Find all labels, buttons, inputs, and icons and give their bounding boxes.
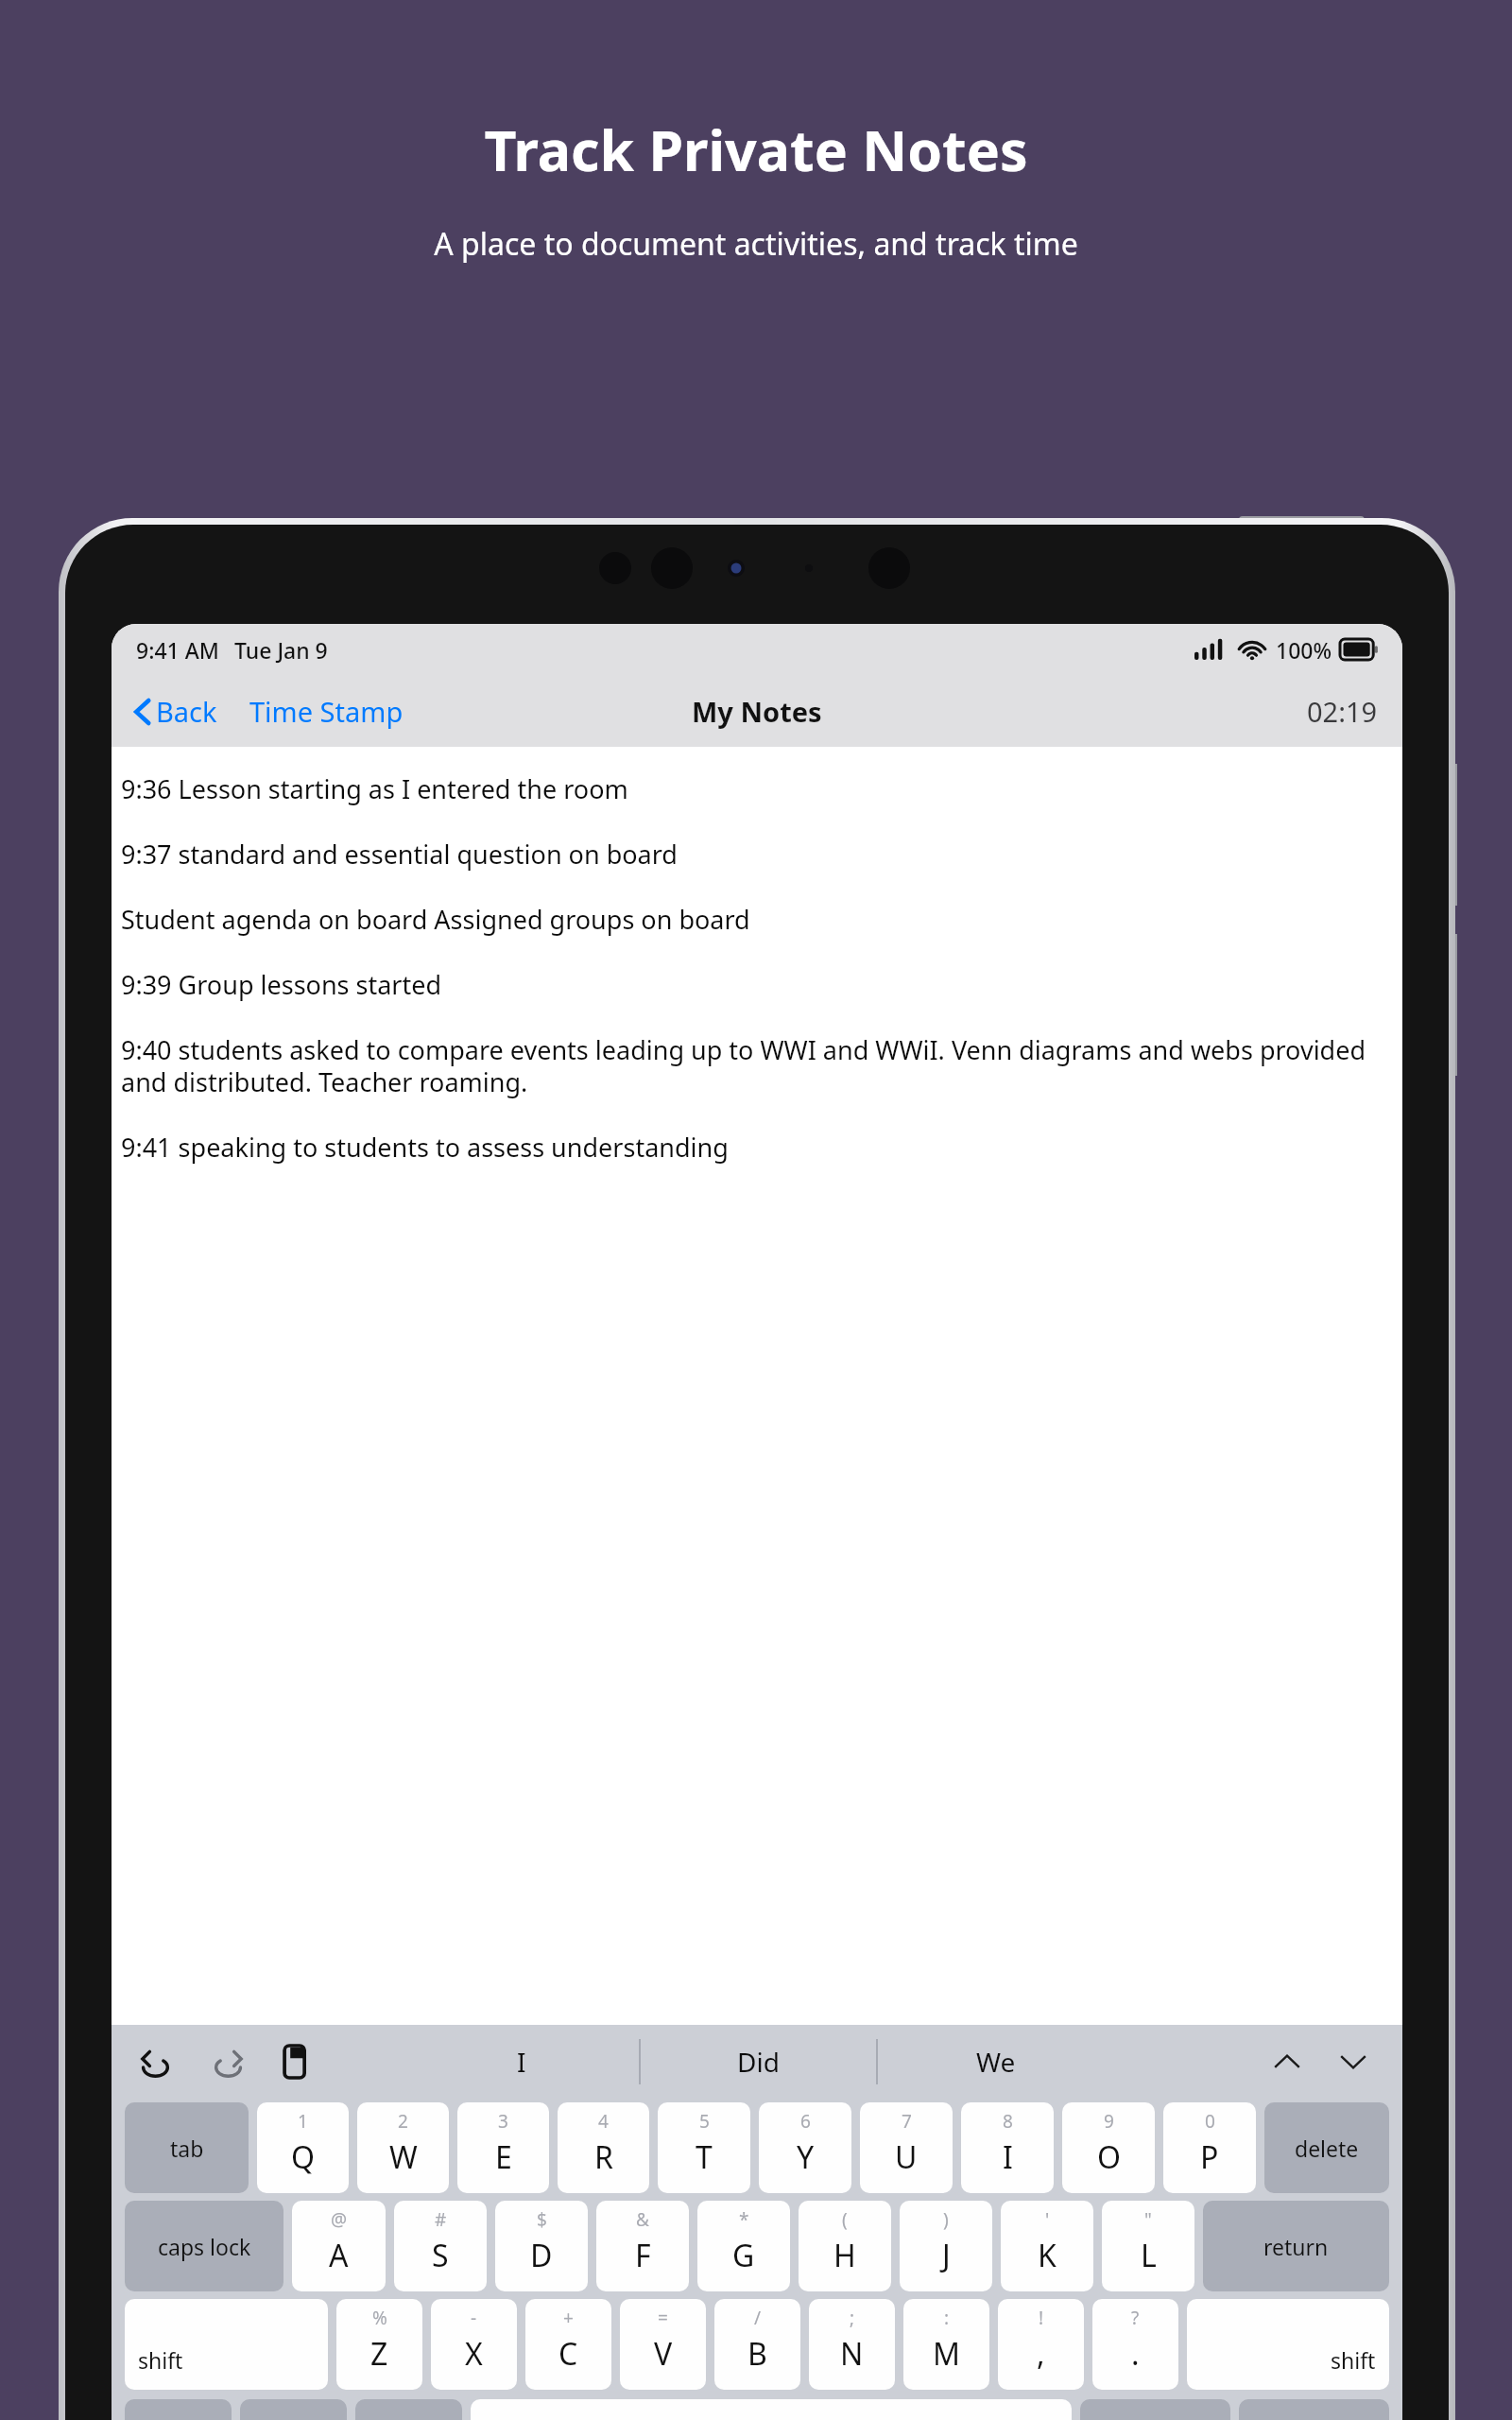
- button[interactable]: 8: [961, 2102, 1054, 2193]
- staticText: shift: [1331, 2345, 1376, 2375]
- staticText: 3: [498, 2109, 508, 2134]
- staticText: ;: [850, 2306, 855, 2330]
- staticText: Q: [291, 2136, 315, 2178]
- staticText: ': [1045, 2207, 1050, 2232]
- staticText: X: [465, 2333, 483, 2375]
- staticText: O: [1097, 2136, 1121, 2178]
- button[interactable]: We: [878, 2025, 1113, 2099]
- staticText: ": [1144, 2207, 1152, 2232]
- button[interactable]: shift: [1187, 2299, 1389, 2390]
- staticText: %: [372, 2306, 387, 2330]
- staticText: N: [840, 2333, 864, 2375]
- staticText: H: [833, 2235, 856, 2276]
- staticText: 2: [398, 2109, 408, 2134]
- staticText: 6: [800, 2109, 811, 2134]
- staticText: Tue Jan 9: [234, 635, 328, 665]
- button[interactable]: ;: [809, 2299, 895, 2390]
- button[interactable]: @: [292, 2201, 386, 2291]
- staticText: A: [329, 2235, 349, 2276]
- button[interactable]: Time Stamp: [242, 687, 411, 735]
- staticText: L: [1141, 2235, 1157, 2276]
- staticText: Back: [156, 693, 217, 730]
- staticText: !: [1039, 2306, 1044, 2330]
- button[interactable]: 6: [759, 2102, 851, 2193]
- button[interactable]: %: [336, 2299, 422, 2390]
- staticText: #: [435, 2207, 447, 2232]
- button[interactable]: I: [404, 2025, 639, 2099]
- staticText: return: [1263, 2232, 1329, 2261]
- button[interactable]: +: [525, 2299, 611, 2390]
- button[interactable]: .?123: [1080, 2399, 1230, 2420]
- staticText: Y: [797, 2136, 815, 2178]
- button[interactable]: /: [714, 2299, 800, 2390]
- button[interactable]: -: [431, 2299, 517, 2390]
- button[interactable]: Hide keyboard: [1239, 2399, 1389, 2420]
- button[interactable]: Dictate: [355, 2399, 462, 2420]
- staticText: C: [558, 2333, 578, 2375]
- button[interactable]: shift: [125, 2299, 328, 2390]
- staticText: 02:19: [1307, 693, 1378, 730]
- staticText: P: [1200, 2136, 1219, 2178]
- button[interactable]: 9:36 Lesson starting as I entered the ro…: [112, 747, 1402, 2025]
- button[interactable]: 3: [457, 2102, 549, 2193]
- staticText: V: [654, 2333, 673, 2375]
- button[interactable]: 2: [357, 2102, 449, 2193]
- button[interactable]: #: [394, 2201, 487, 2291]
- button[interactable]: Paste: [272, 2037, 321, 2086]
- staticText: 9:41 AM: [136, 635, 219, 665]
- button[interactable]: 5: [658, 2102, 750, 2193]
- button[interactable]: Next: [1327, 2035, 1380, 2088]
- button[interactable]: return: [1203, 2201, 1389, 2291]
- staticText: K: [1038, 2235, 1057, 2276]
- staticText: 8: [1003, 2109, 1013, 2134]
- button[interactable]: Emoji: [125, 2399, 232, 2420]
- staticText: I: [517, 2044, 526, 2080]
- staticText: J: [942, 2235, 951, 2276]
- button[interactable]: delete: [1264, 2102, 1389, 2193]
- button[interactable]: &: [596, 2201, 689, 2291]
- button[interactable]: 1: [257, 2102, 349, 2193]
- button[interactable]: Back: [127, 687, 225, 735]
- button[interactable]: .?123: [240, 2399, 347, 2420]
- button[interactable]: Did: [641, 2025, 876, 2099]
- staticText: shift: [138, 2345, 183, 2375]
- button[interactable]: 0: [1163, 2102, 1256, 2193]
- button[interactable]: !: [998, 2299, 1084, 2390]
- button[interactable]: 4: [558, 2102, 649, 2193]
- button[interactable]: Redo: [202, 2037, 251, 2086]
- staticText: U: [895, 2136, 918, 2178]
- button[interactable]: =: [620, 2299, 706, 2390]
- button[interactable]: ': [1001, 2201, 1093, 2291]
- staticText: E: [495, 2136, 512, 2178]
- staticText: Student agenda on board Assigned groups …: [121, 902, 750, 937]
- staticText: ,: [1037, 2333, 1045, 2375]
- button[interactable]: ?: [1092, 2299, 1178, 2390]
- button[interactable]: Previous: [1261, 2035, 1314, 2088]
- staticText: T: [696, 2136, 713, 2178]
- button[interactable]: Space: [471, 2399, 1072, 2420]
- staticText: D: [530, 2235, 553, 2276]
- button[interactable]: $: [495, 2201, 588, 2291]
- staticText: B: [747, 2333, 767, 2375]
- staticText: R: [594, 2136, 613, 2178]
- staticText: 9:36 Lesson starting as I entered the ro…: [121, 771, 628, 806]
- staticText: ?: [1131, 2306, 1140, 2330]
- staticText: G: [732, 2235, 755, 2276]
- button[interactable]: 7: [860, 2102, 953, 2193]
- staticText: /: [754, 2306, 762, 2330]
- button[interactable]: 9: [1062, 2102, 1155, 2193]
- button[interactable]: Undo: [132, 2037, 181, 2086]
- button[interactable]: tab: [125, 2102, 249, 2193]
- button[interactable]: ": [1102, 2201, 1194, 2291]
- staticText: tab: [170, 2134, 204, 2163]
- staticText: ): [943, 2207, 949, 2232]
- button[interactable]: (: [799, 2201, 891, 2291]
- button[interactable]: caps lock: [125, 2201, 283, 2291]
- staticText: 9:37 standard and essential question on …: [121, 837, 678, 872]
- button[interactable]: *: [697, 2201, 790, 2291]
- button[interactable]: :: [903, 2299, 989, 2390]
- staticText: Did: [737, 2044, 780, 2080]
- staticText: +: [563, 2306, 574, 2330]
- staticText: &: [636, 2207, 649, 2232]
- button[interactable]: ): [900, 2201, 992, 2291]
